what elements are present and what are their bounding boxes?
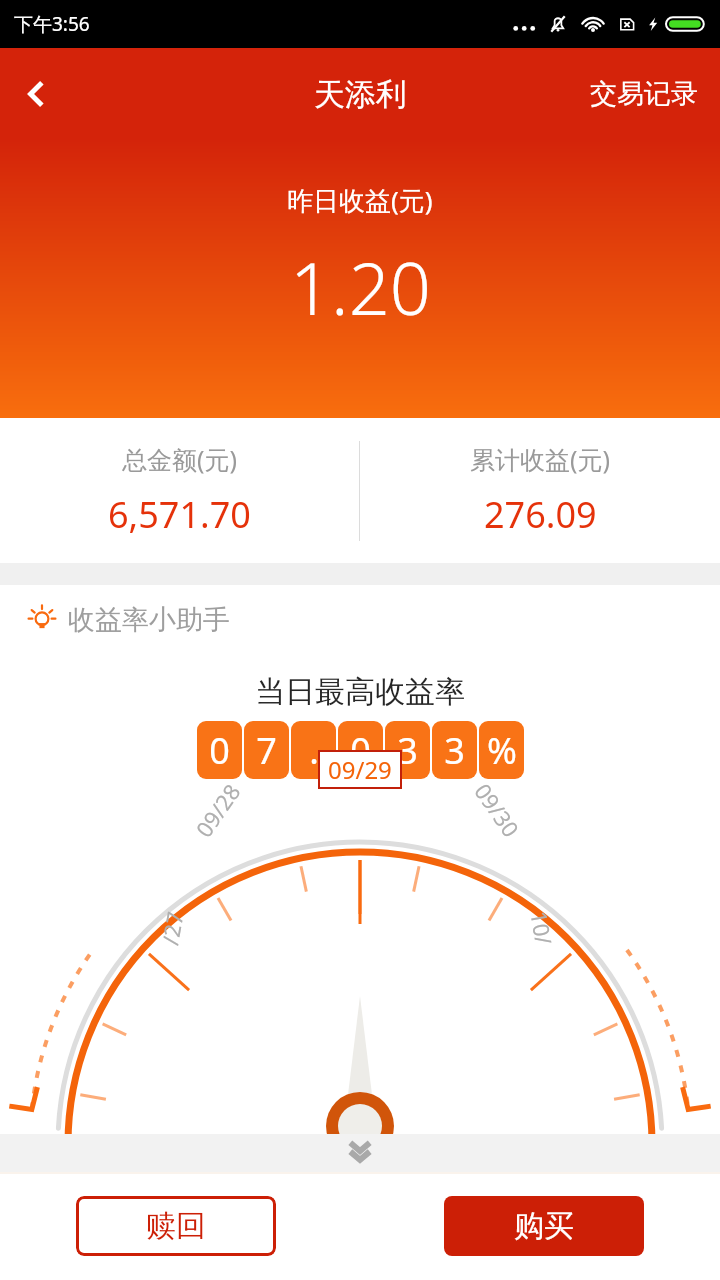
staticText: 3 xyxy=(444,726,465,775)
button[interactable]: 总金额(元) xyxy=(0,418,359,563)
staticText: 总金额(元) xyxy=(122,442,238,476)
staticText: 09/28 xyxy=(188,777,247,843)
staticText: 当日最高收益率 xyxy=(255,673,465,711)
staticText: 276.09 xyxy=(484,490,597,539)
staticText: /27 xyxy=(154,909,190,947)
staticText: 09/29 xyxy=(328,753,392,786)
staticText: 昨日收益(元) xyxy=(287,182,433,218)
button[interactable]: Expand xyxy=(0,1134,720,1172)
staticText: 0 xyxy=(209,726,230,775)
button[interactable]: 购买 xyxy=(444,1196,644,1256)
button[interactable]: 累计收益(元) xyxy=(360,418,720,563)
staticText: 天添利 xyxy=(314,75,407,114)
staticText: 3 xyxy=(397,726,418,775)
staticText: 09/30 xyxy=(468,777,527,843)
button[interactable]: 交易记录 xyxy=(568,61,720,127)
button[interactable]: 赎回 xyxy=(76,1196,276,1256)
staticText: 7 xyxy=(256,726,277,775)
staticText: 6,571.70 xyxy=(108,490,251,539)
staticText: 收益率小助手 xyxy=(68,603,230,637)
staticText: 交易记录 xyxy=(590,77,698,111)
staticText: . xyxy=(309,726,319,775)
button[interactable]: Back xyxy=(0,58,72,130)
staticText: 下午3:56 xyxy=(14,11,90,37)
staticText: 10/ xyxy=(524,909,560,947)
staticText: 0 xyxy=(350,726,371,775)
staticText: % xyxy=(487,726,517,775)
staticText: 累计收益(元) xyxy=(470,442,611,476)
button[interactable]: 收益率小助手 xyxy=(0,585,720,655)
staticText: 购买 xyxy=(514,1207,574,1245)
staticText: 赎回 xyxy=(146,1207,206,1245)
staticText: 1.20 xyxy=(290,238,431,336)
